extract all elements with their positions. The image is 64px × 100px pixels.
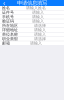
button[interactable]: 证件号 [0,10,64,15]
button[interactable]: 单位名称 [0,32,64,37]
button[interactable]: 验证码 [0,19,64,24]
staticText: 单位名称 [2,32,18,37]
staticText: 请输入 [32,10,44,15]
staticText: 请输入 [32,19,44,24]
staticText: 请输入姓名 [26,5,46,10]
button[interactable]: 职业类型 [0,37,64,41]
button[interactable]: 邮箱 [0,41,64,46]
staticText: 请输入 [30,41,42,46]
staticText: 详细地址 [2,27,18,32]
staticText: 邮箱 [2,41,10,46]
staticText: 职业类型 [2,36,18,41]
staticText: 验证码 [2,19,14,24]
button[interactable]: 手机号 [0,15,64,19]
staticText: 所在地区 [2,23,18,28]
button[interactable]: 所在地区 [0,24,64,28]
staticText: 请选择 [34,23,46,28]
button[interactable]: Back [0,0,8,6]
staticText: ‹ [3,0,5,7]
staticText: 请输入 [34,27,46,32]
staticText: 请输入 [34,32,46,37]
staticText: 手机号 [2,14,14,19]
button[interactable]: 姓名 [0,6,64,10]
staticText: 姓名 [2,5,10,10]
staticText: 请输入 [32,14,44,19]
staticText: 请选择 [34,36,46,41]
staticText: 证件号 [2,10,14,15]
staticText: 申请信息填写 [17,0,47,6]
button[interactable]: 详细地址 [0,28,64,32]
